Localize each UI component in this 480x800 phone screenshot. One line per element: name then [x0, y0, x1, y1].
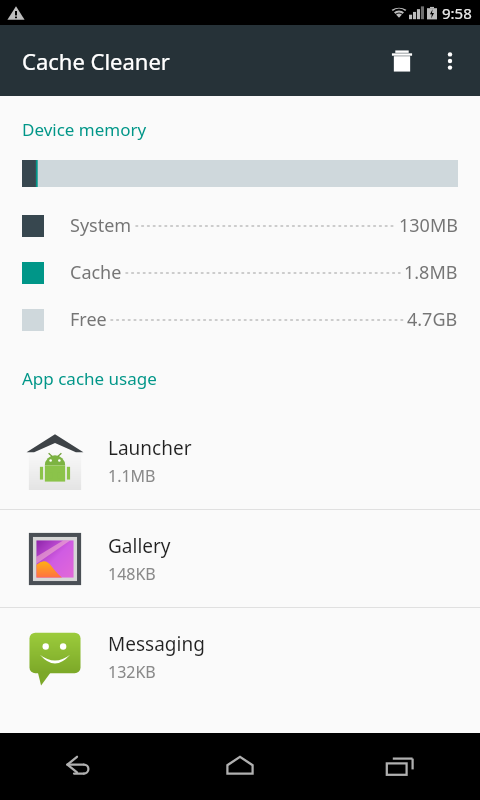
staticText: 148KB: [108, 563, 156, 585]
staticText: 1.1MB: [108, 465, 156, 487]
staticText: 4.7GB: [407, 307, 458, 332]
staticText: 1.8MB: [404, 260, 458, 285]
button[interactable]: Clear cache: [378, 37, 426, 85]
staticText: 9:58: [442, 3, 472, 23]
staticText: 130MB: [399, 213, 458, 238]
button[interactable]: Gallery: [0, 510, 480, 607]
button[interactable]: Messaging: [0, 608, 480, 705]
staticText: Gallery: [108, 533, 171, 559]
button[interactable]: Free: [0, 296, 480, 343]
staticText: Messaging: [108, 631, 205, 657]
staticText: Launcher: [108, 435, 192, 461]
button[interactable]: System: [0, 202, 480, 249]
button[interactable]: Back: [0, 733, 160, 800]
staticText: Cache: [70, 260, 122, 285]
staticText: Device memory: [22, 118, 147, 141]
staticText: System: [70, 213, 132, 238]
button[interactable]: Launcher: [0, 412, 480, 509]
button[interactable]: Recent apps: [320, 733, 480, 800]
staticText: Cache Cleaner: [22, 46, 170, 76]
staticText: Free: [70, 307, 107, 332]
staticText: 132KB: [108, 661, 156, 683]
button[interactable]: Home: [160, 733, 320, 800]
staticText: App cache usage: [22, 367, 157, 390]
button[interactable]: More options: [426, 37, 474, 85]
button[interactable]: Cache: [0, 249, 480, 296]
